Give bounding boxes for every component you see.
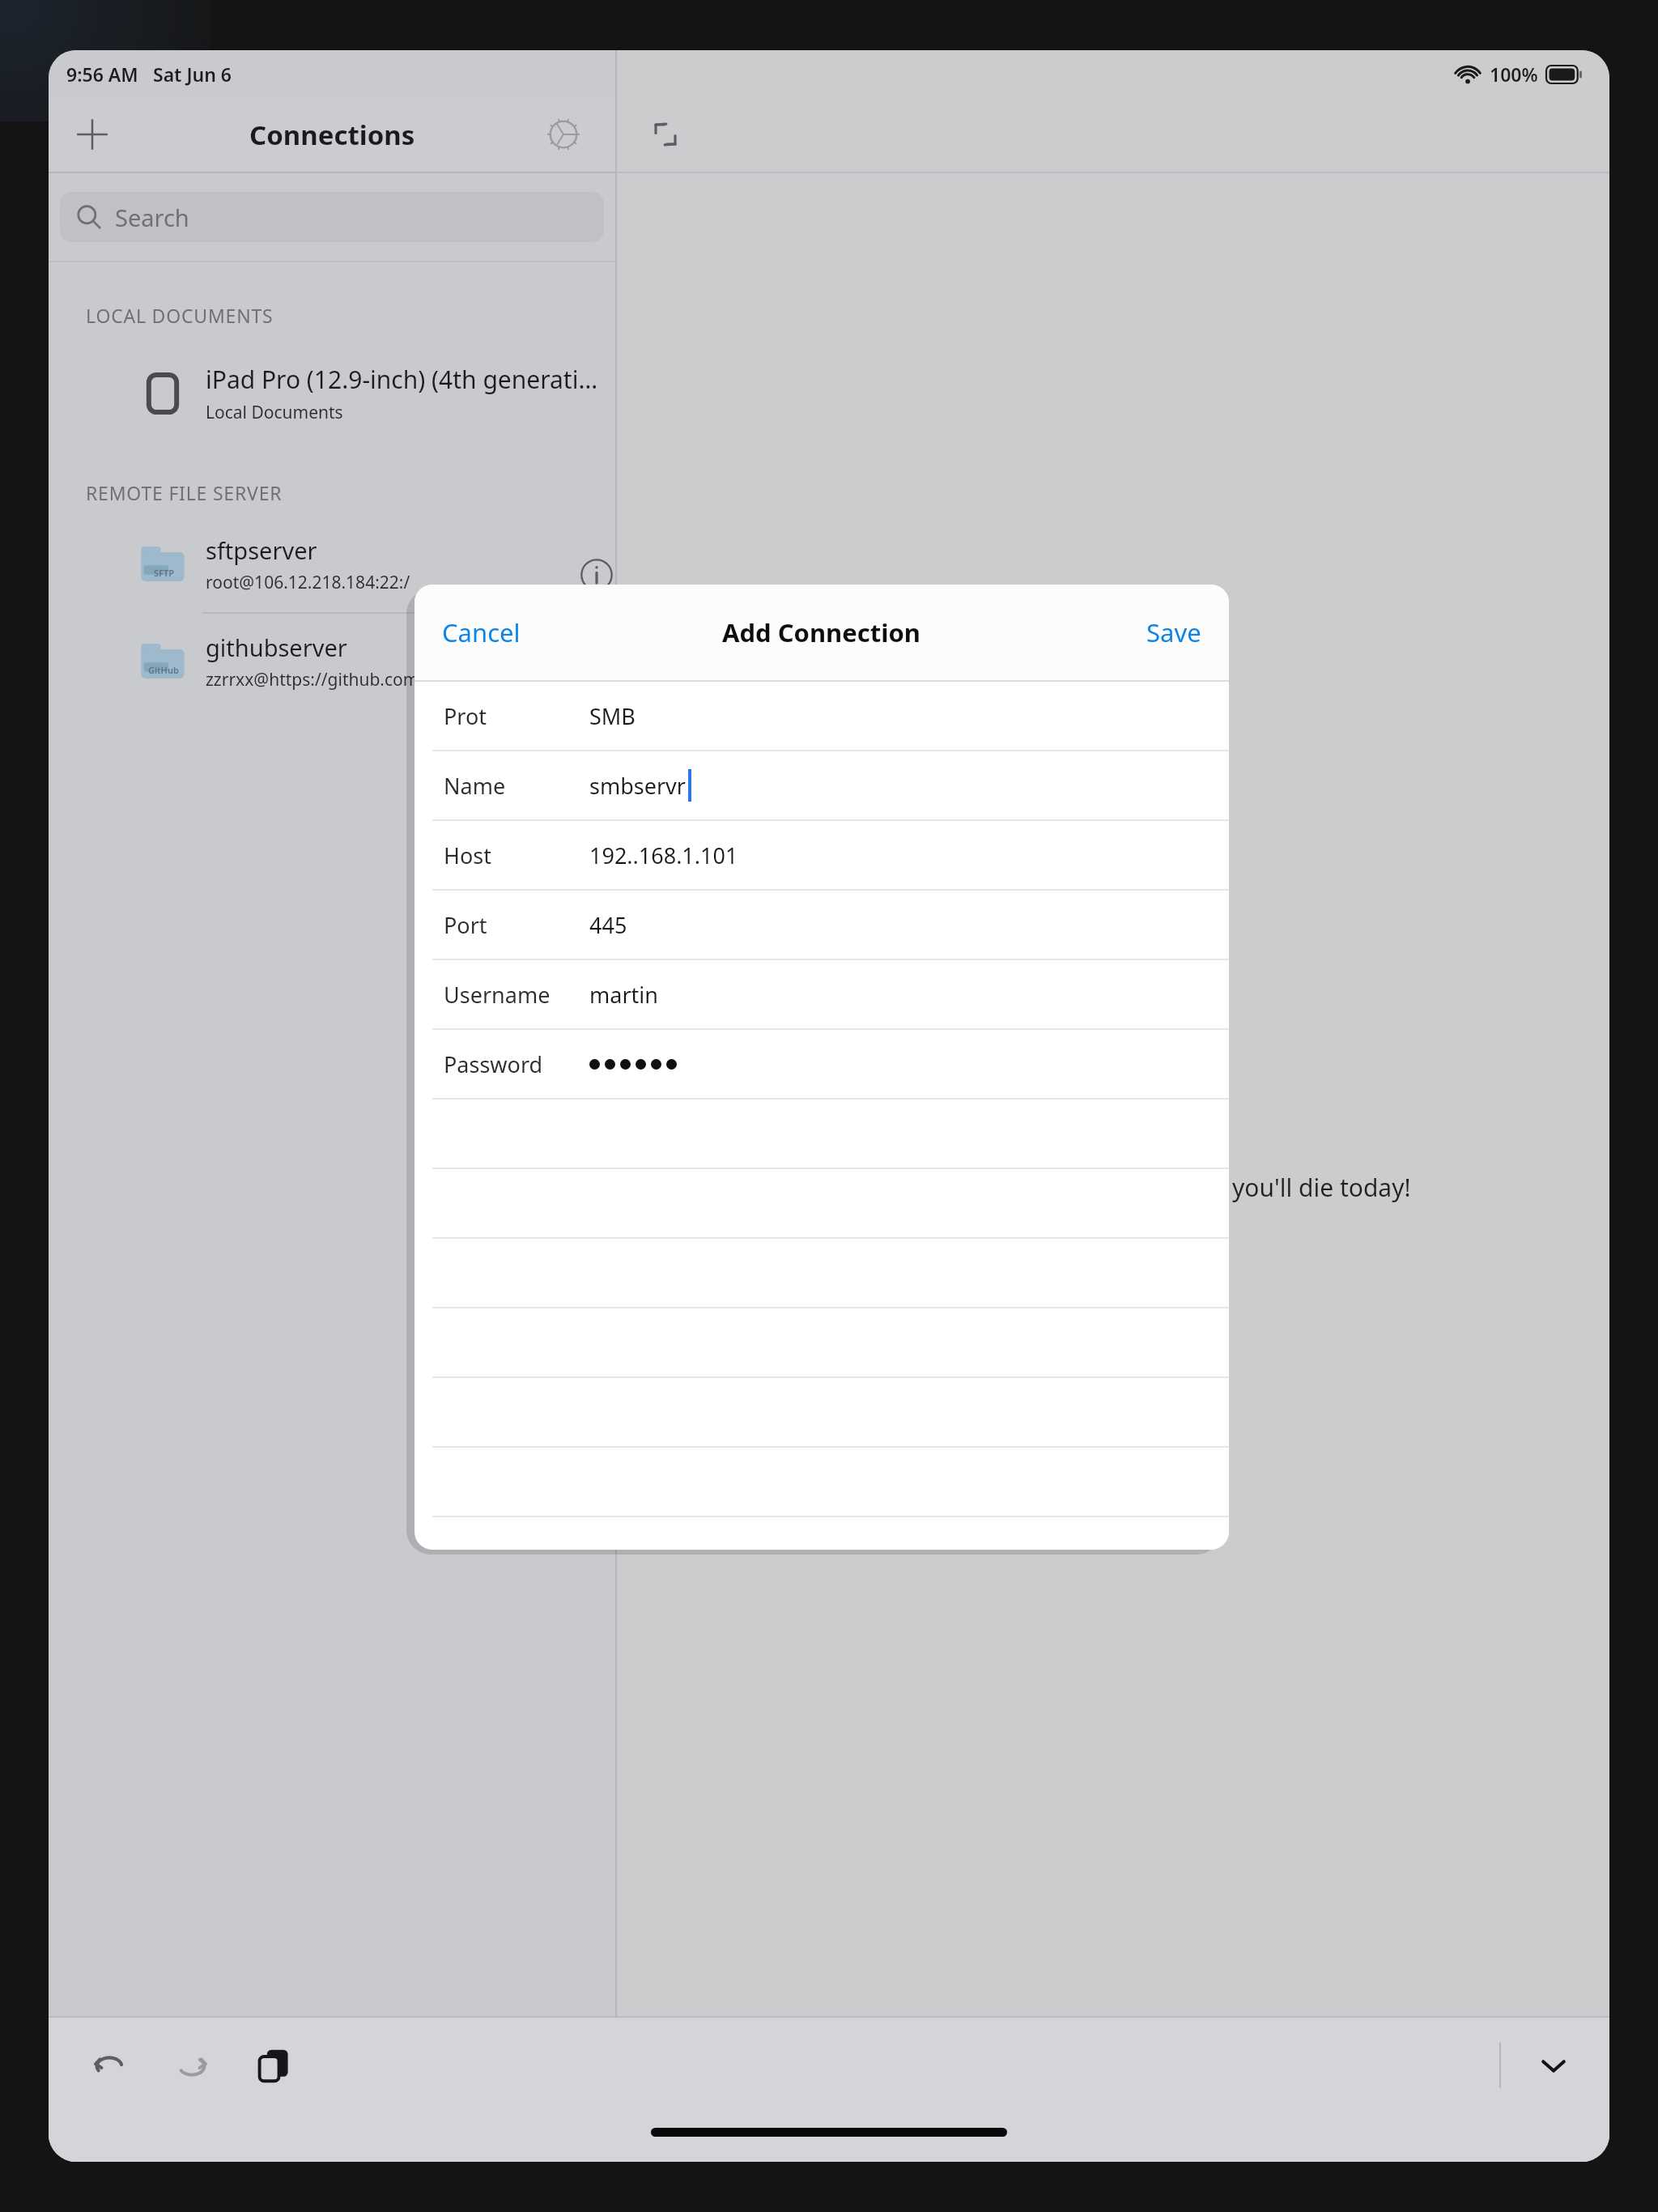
staticText: Sat Jun 6 [153,62,232,87]
staticText: sftpserver [206,534,317,566]
staticText: martin [589,980,658,1010]
staticText: REMOTE FILE SERVER [86,480,283,505]
button[interactable]: Settings [538,108,589,160]
staticText: Name [444,771,506,801]
button[interactable]: Search [60,192,604,242]
staticText: you'll die today! [1232,1171,1411,1204]
button[interactable]: Undo [78,2034,141,2097]
staticText: 192..168.1.101 [589,840,738,870]
staticText: Save [1146,615,1201,649]
staticText: Host [444,840,492,870]
staticText: 9:56 AM [66,62,138,87]
staticText: Local Documents [206,401,343,424]
staticText: root@106.12.218.184:22:/ [206,571,410,594]
button[interactable]: Hide keyboard [1522,2034,1585,2097]
staticText: 445 [589,910,627,940]
staticText: GitHub [148,664,179,676]
staticText: iPad Pro (12.9-inch) (4th generati… [206,363,598,396]
button[interactable]: Connection info [571,549,623,601]
staticText: zzrrxx@https://github.com/zz… [206,668,455,691]
button[interactable]: Redo [160,2034,223,2097]
button[interactable]: Prot [414,682,1229,750]
button[interactable]: SFTP [49,517,615,612]
button[interactable]: Password [414,1030,1229,1098]
button[interactable]: Add connection [66,108,118,160]
button[interactable]: Username [414,960,1229,1028]
staticText: Password [444,1049,543,1079]
button[interactable]: Port [414,891,1229,959]
staticText: Connections [249,117,415,153]
staticText: 100% [1490,62,1538,87]
button[interactable]: Save [1133,607,1214,657]
staticText: Add Connection [722,615,921,649]
staticText: githubserver [206,632,347,663]
button[interactable]: GitHub [49,614,615,709]
staticText: smbservr [589,771,686,801]
staticText: SMB [589,701,636,731]
button[interactable]: Paste [243,2034,306,2097]
staticText: LOCAL DOCUMENTS [86,303,274,328]
staticText: Username [444,980,551,1010]
staticText: Port [444,910,487,940]
staticText: Prot [444,701,487,731]
button[interactable]: Cancel [429,607,534,657]
staticText: Cancel [442,615,521,649]
staticText: SFTP [154,567,174,579]
staticText: Search [115,202,189,233]
button[interactable]: Name [414,751,1229,819]
button[interactable]: iPad Pro (12.9-inch) (4th generati… [49,346,615,441]
button[interactable]: Host [414,821,1229,889]
button[interactable]: Toggle full screen [640,108,691,160]
